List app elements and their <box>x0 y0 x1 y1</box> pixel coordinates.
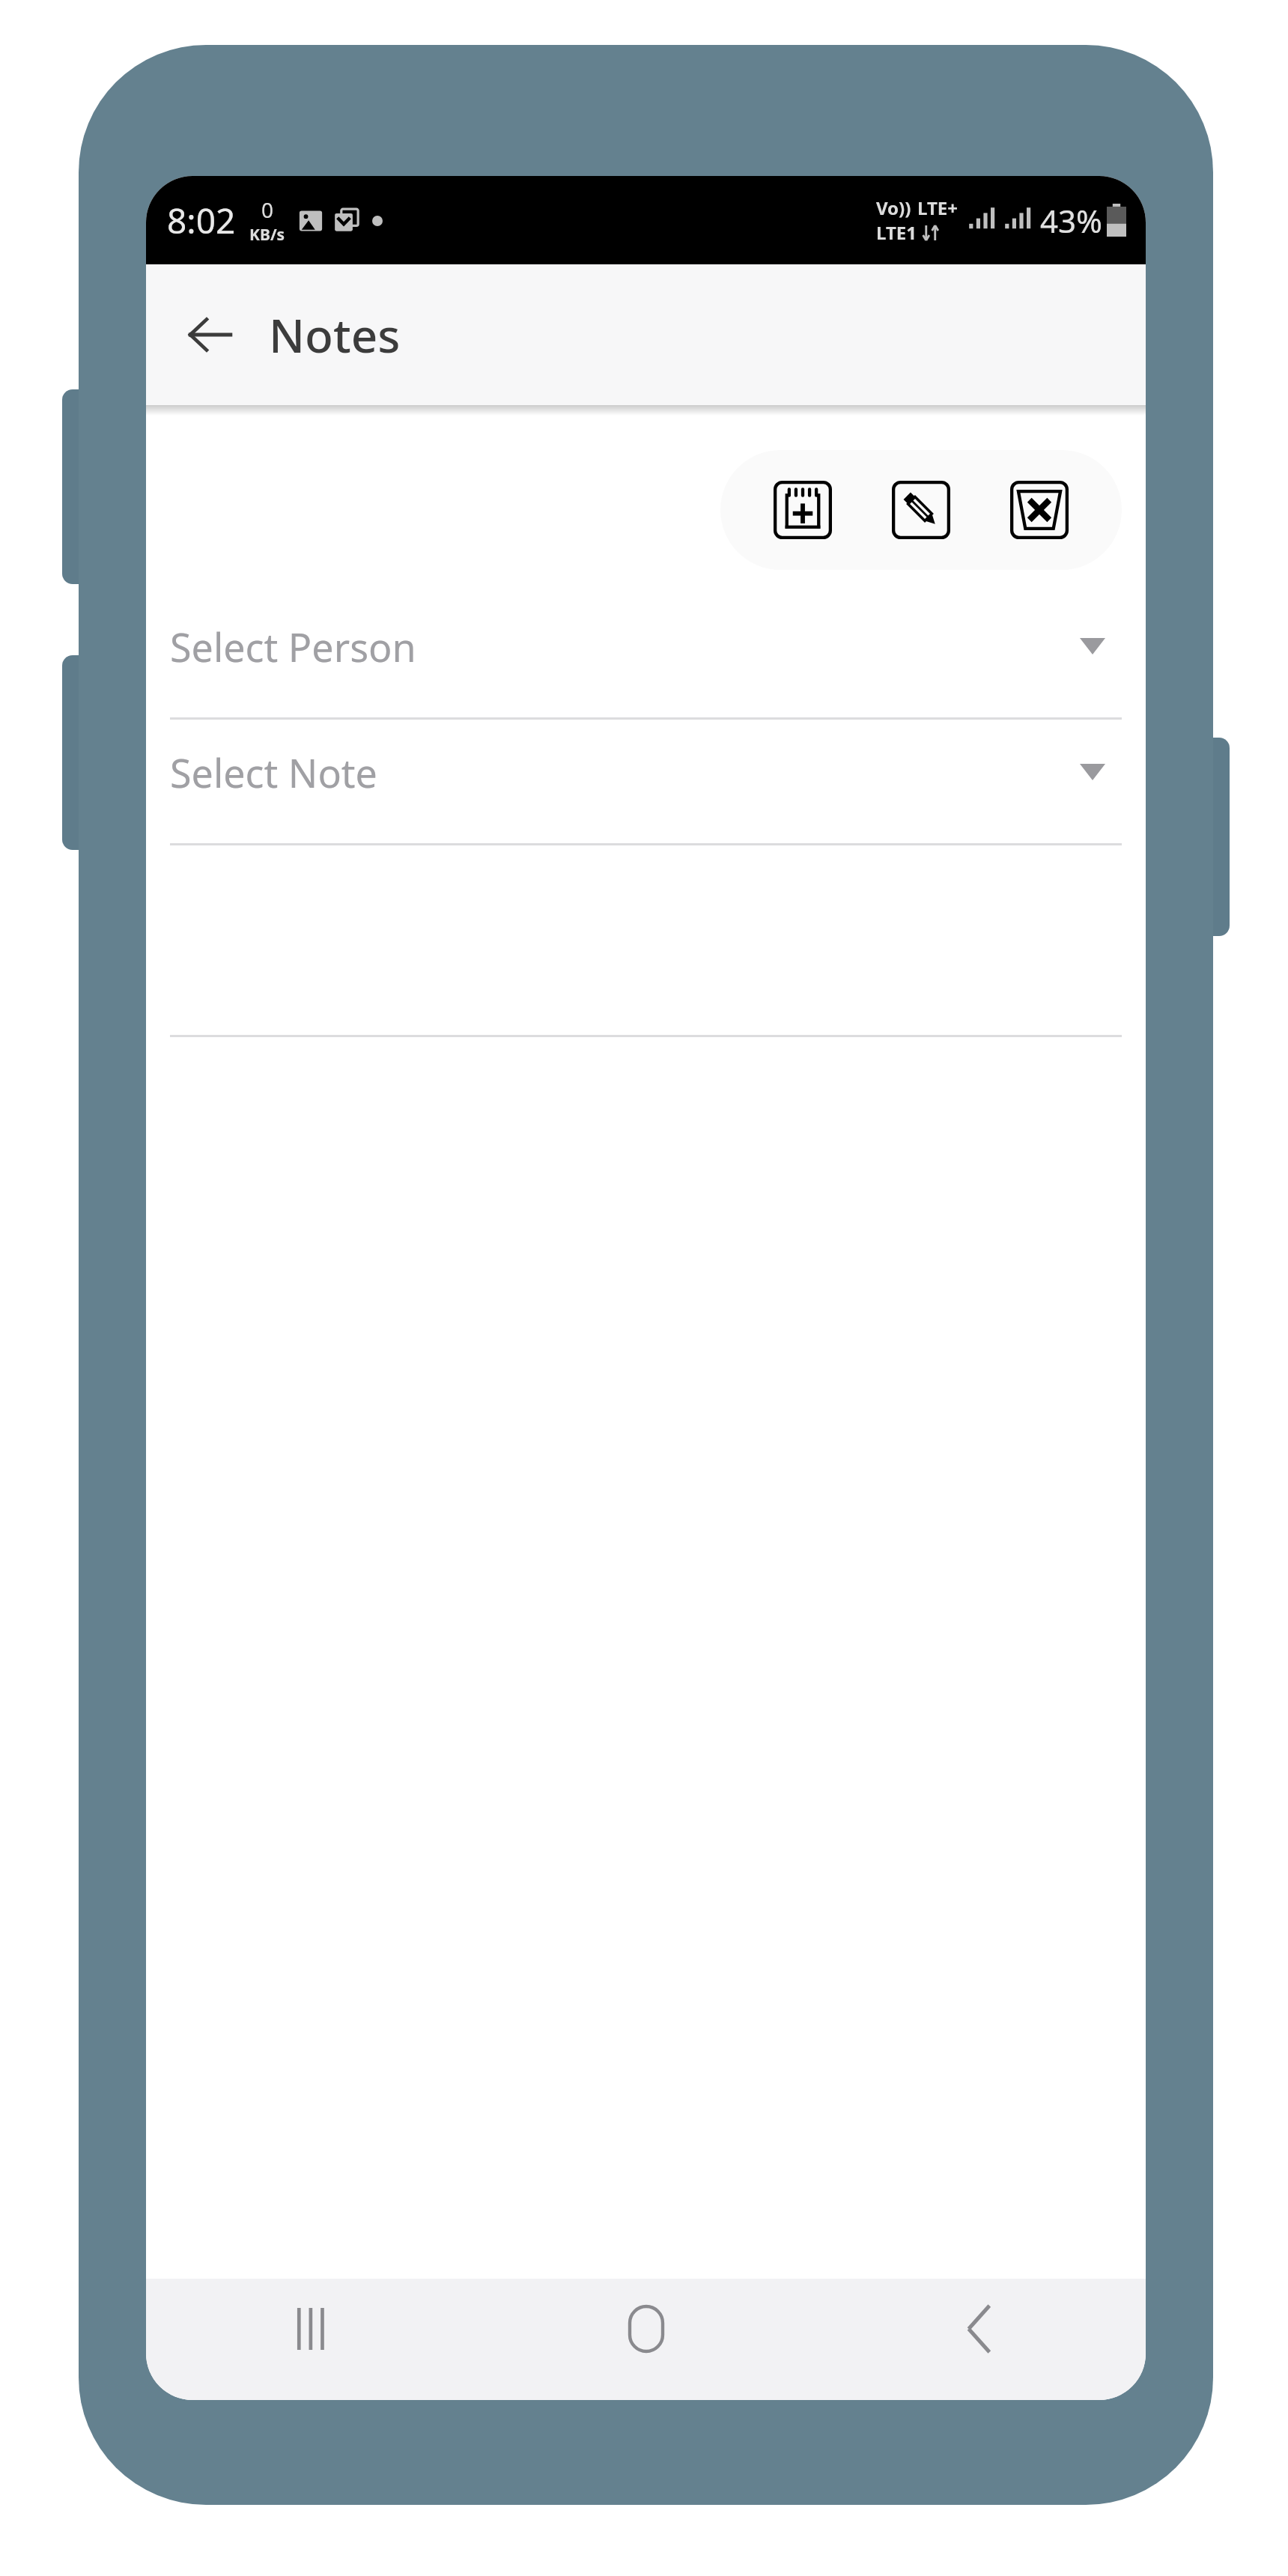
staticText: Select Note <box>170 746 377 799</box>
staticText: Notes <box>269 303 401 366</box>
staticText: 8:02 <box>167 197 236 244</box>
staticText: Select Person <box>170 620 416 673</box>
staticText: Vo)) <box>876 195 911 220</box>
button[interactable]: Select Person <box>170 594 1122 720</box>
button[interactable]: Edit note <box>885 474 957 546</box>
staticText: 43% <box>1040 199 1102 242</box>
staticText: LTE1 <box>876 220 917 245</box>
button[interactable] <box>170 845 1122 1037</box>
button[interactable]: Recent apps <box>146 2284 479 2374</box>
button[interactable]: Add note <box>767 474 839 546</box>
button[interactable]: Back <box>812 2284 1146 2374</box>
staticText: KB/s <box>249 224 285 246</box>
button[interactable]: Back <box>174 299 246 371</box>
staticText: 0 <box>261 195 274 224</box>
button[interactable]: Home <box>479 2284 812 2374</box>
staticText: LTE+ <box>917 195 958 220</box>
button[interactable]: Delete note <box>1003 474 1075 546</box>
button[interactable]: Select Note <box>170 720 1122 845</box>
